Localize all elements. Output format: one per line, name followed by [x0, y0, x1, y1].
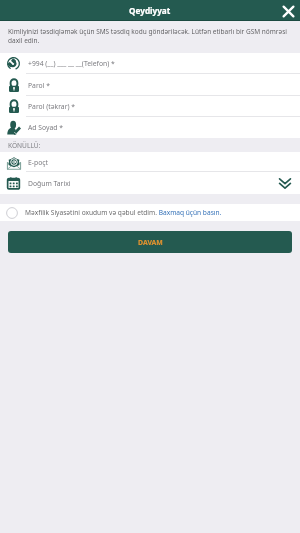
button[interactable]: Parol (təkrar) * — [0, 96, 300, 117]
button[interactable]: E-poçt — [0, 152, 300, 172]
button[interactable]: Close — [279, 2, 297, 20]
button[interactable]: +994 (__) ___ __ __(Telefon) * — [0, 53, 300, 74]
staticText: +994 (__) ___ __ __(Telefon) * — [28, 59, 115, 68]
staticText: Doğum Tarixi — [28, 179, 71, 188]
button[interactable]: Məxfilik Siyasətini oxudum və qəbul etdi… — [0, 204, 300, 221]
button[interactable]: Parol * — [0, 74, 300, 96]
staticText: DAVAM — [138, 238, 163, 247]
staticText: E-poçt — [28, 158, 48, 167]
staticText: Məxfilik Siyasətini oxudum və qəbul etdi… — [25, 208, 222, 217]
staticText: Kimliyinizi təsdiqləmək üçün SMS təsdiq … — [8, 27, 293, 45]
staticText: Parol * — [28, 81, 50, 90]
button[interactable]: DAVAM — [8, 231, 292, 253]
staticText: Parol (təkrar) * — [28, 102, 76, 111]
staticText: KÖNÜLLÜ: — [8, 141, 41, 150]
staticText: Ad Soyad * — [28, 123, 63, 132]
staticText: Qeydiyyat — [129, 5, 171, 16]
other: Select date — [277, 176, 293, 192]
button[interactable]: Doğum Tarixi — [0, 172, 300, 194]
button[interactable]: Ad Soyad * — [0, 117, 300, 138]
